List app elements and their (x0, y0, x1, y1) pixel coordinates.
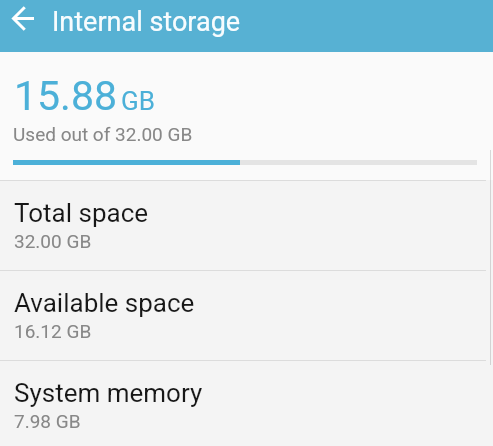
staticText: 7.98 GB (14, 410, 81, 432)
staticText: 32.00 GB (14, 230, 92, 252)
button[interactable]: System memory (0, 361, 493, 446)
staticText: 16.12 GB (14, 320, 92, 342)
staticText: 15.88 (14, 72, 117, 120)
button[interactable]: Available space (0, 271, 493, 360)
staticText: Total space (14, 198, 149, 228)
staticText: Internal storage (52, 6, 241, 38)
staticText: Available space (14, 288, 195, 318)
button[interactable]: Total space (0, 181, 493, 270)
staticText: Used out of 32.00 GB (13, 123, 193, 145)
button[interactable]: Navigate up (3, 0, 43, 38)
staticText: System memory (14, 378, 203, 408)
staticText: GB (121, 86, 155, 116)
